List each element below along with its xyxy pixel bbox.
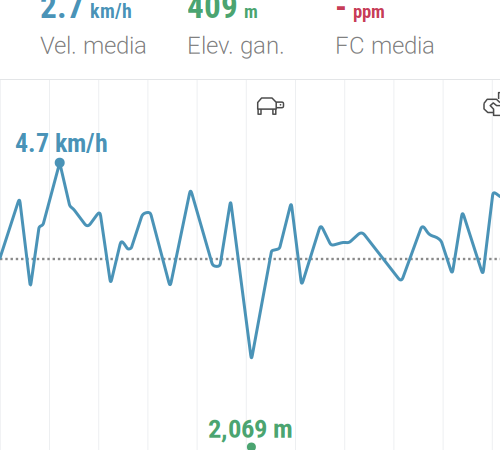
staticText: 2.7 <box>40 0 84 26</box>
staticText: 409 <box>187 0 238 26</box>
staticText: Vel. media <box>40 31 147 60</box>
staticText: ppm <box>353 1 385 22</box>
staticText: 2,069 m <box>208 413 293 444</box>
staticText: m <box>244 1 258 22</box>
staticText: - <box>335 0 347 26</box>
staticText: 4.7 km/h <box>15 128 108 158</box>
staticText: Elev. gan. <box>187 31 285 60</box>
staticText: km/h <box>90 0 132 23</box>
staticText: FC media <box>335 31 435 60</box>
